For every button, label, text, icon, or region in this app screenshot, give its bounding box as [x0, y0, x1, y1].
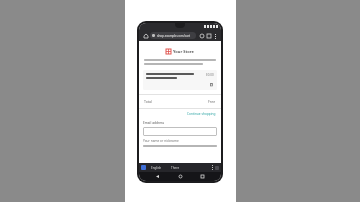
button[interactable]: shop.example.com/cart — [150, 32, 196, 39]
button[interactable]: $0.00 — [143, 70, 217, 90]
staticText: Continue shopping — [187, 112, 216, 116]
button[interactable]: Home — [142, 32, 149, 39]
button[interactable]: Remove item — [209, 82, 214, 87]
staticText: Your Store — [173, 49, 194, 54]
button[interactable]: More suggestions — [210, 165, 215, 170]
staticText: Free — [208, 99, 216, 104]
button[interactable]: Keyboard settings — [141, 165, 146, 170]
button[interactable]: Close keyboard — [215, 166, 219, 170]
button[interactable]: Back — [154, 173, 161, 180]
staticText: shop.example.com/cart — [157, 34, 191, 38]
button[interactable]: Home — [177, 173, 184, 180]
button[interactable]: Tabs — [205, 32, 212, 39]
button[interactable]: Continue shopping — [187, 112, 216, 116]
staticText: English — [151, 166, 162, 170]
button[interactable]: Recent apps — [199, 173, 206, 180]
staticText: There — [171, 166, 180, 170]
button[interactable]: Share — [198, 32, 205, 39]
button[interactable]: There — [169, 165, 182, 171]
button[interactable] — [143, 127, 217, 136]
button[interactable]: More options — [212, 33, 218, 39]
staticText: Email address — [143, 121, 165, 125]
button[interactable]: English — [149, 165, 164, 171]
staticText: Total — [144, 99, 152, 104]
staticText: $0.00 — [206, 73, 214, 77]
staticText: Your name or nickname — [143, 139, 179, 143]
